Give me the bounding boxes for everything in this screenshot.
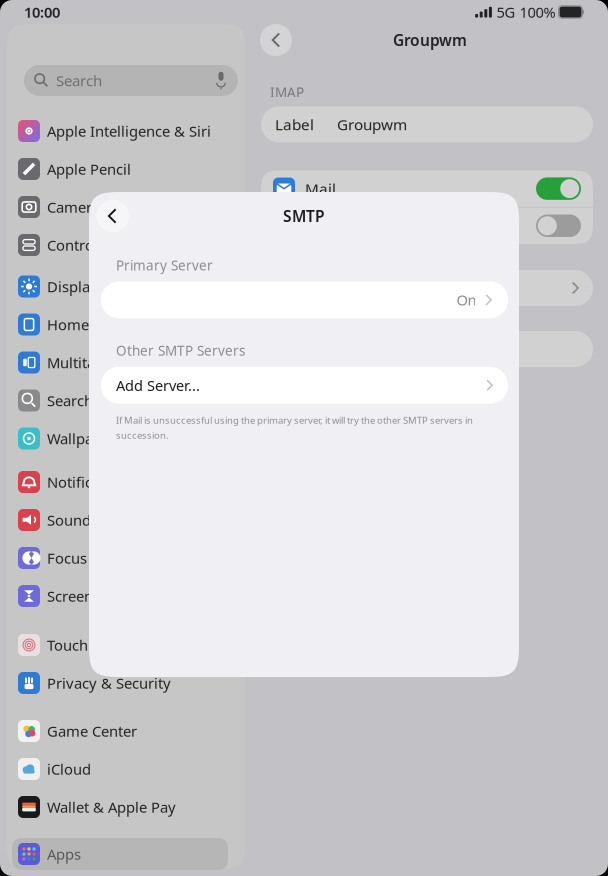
staticText: Label xyxy=(275,114,314,135)
button[interactable]: Notifications xyxy=(12,466,228,498)
button[interactable]: Home Screen & App Library xyxy=(12,308,228,340)
staticText: Focus xyxy=(47,548,87,568)
staticText: succession. xyxy=(116,429,169,441)
button[interactable]: Apple Intelligence & Siri xyxy=(12,115,228,147)
staticText: If Mail is unsuccessful using the primar… xyxy=(116,414,473,427)
staticText: Add Server... xyxy=(116,375,200,395)
staticText: iCloud xyxy=(47,759,91,779)
staticText: Multitasking & Gestures xyxy=(47,352,212,372)
staticText: 10:00 xyxy=(24,2,60,22)
button[interactable]: Control Center xyxy=(12,229,228,261)
staticText: On xyxy=(456,290,476,310)
staticText: Control Center xyxy=(47,235,147,255)
button[interactable]: Back xyxy=(260,24,292,56)
staticText: Screen Time xyxy=(47,586,131,606)
button[interactable]: Focus xyxy=(12,542,228,574)
staticText: Apple Intelligence & Siri xyxy=(47,121,211,141)
button[interactable]: Game Center xyxy=(12,715,228,747)
staticText: Apple Pencil xyxy=(47,159,131,179)
button[interactable]: Apple Pencil xyxy=(12,153,228,185)
button[interactable]: Sounds xyxy=(12,504,228,536)
staticText: Display & Brightness xyxy=(47,276,191,296)
button[interactable]: Back xyxy=(97,200,129,232)
button[interactable]: Privacy & Security xyxy=(12,667,228,699)
staticText: 5G 100% xyxy=(492,2,559,22)
staticText: Primary Server xyxy=(116,256,213,274)
staticText: Apps xyxy=(47,844,81,864)
staticText: Home Screen & App Library xyxy=(47,314,213,334)
staticText: Wallpaper xyxy=(47,428,116,448)
staticText: Mail xyxy=(305,178,336,199)
button[interactable]: iCloud xyxy=(12,753,228,785)
staticText: Groupwm xyxy=(393,29,467,51)
button[interactable]: Display & Brightness xyxy=(12,270,228,302)
button[interactable]: Screen Time xyxy=(12,580,228,612)
staticText: Touch ID & Passcode xyxy=(47,635,191,655)
button[interactable]: Wallpaper xyxy=(12,422,228,454)
staticText: Game Center xyxy=(47,721,137,741)
button[interactable]: Wallet & Apple Pay xyxy=(12,791,228,823)
button[interactable]: Apps xyxy=(12,838,228,870)
staticText: Search xyxy=(56,70,102,91)
staticText: Notes xyxy=(305,215,348,236)
staticText: SMTP xyxy=(283,205,325,227)
staticText: Groupwm xyxy=(337,114,407,135)
staticText: Search xyxy=(47,390,93,410)
staticText: IMAP xyxy=(270,83,304,101)
staticText: Other SMTP Servers xyxy=(116,341,245,360)
staticText: Wallet & Apple Pay xyxy=(47,797,176,817)
button[interactable]: Add Server... xyxy=(101,367,508,404)
staticText: Sounds xyxy=(47,510,98,530)
staticText: Camera xyxy=(47,197,100,217)
staticText: Privacy & Security xyxy=(47,673,171,693)
staticText: Advanced xyxy=(275,278,345,298)
button[interactable]: Multitasking & Gestures xyxy=(12,346,228,378)
staticText: Notifications xyxy=(47,472,134,492)
button[interactable]: Camera xyxy=(12,191,228,223)
button[interactable]: On xyxy=(101,281,508,318)
button[interactable]: Search xyxy=(12,384,228,416)
button[interactable]: Touch ID & Passcode xyxy=(12,629,228,661)
